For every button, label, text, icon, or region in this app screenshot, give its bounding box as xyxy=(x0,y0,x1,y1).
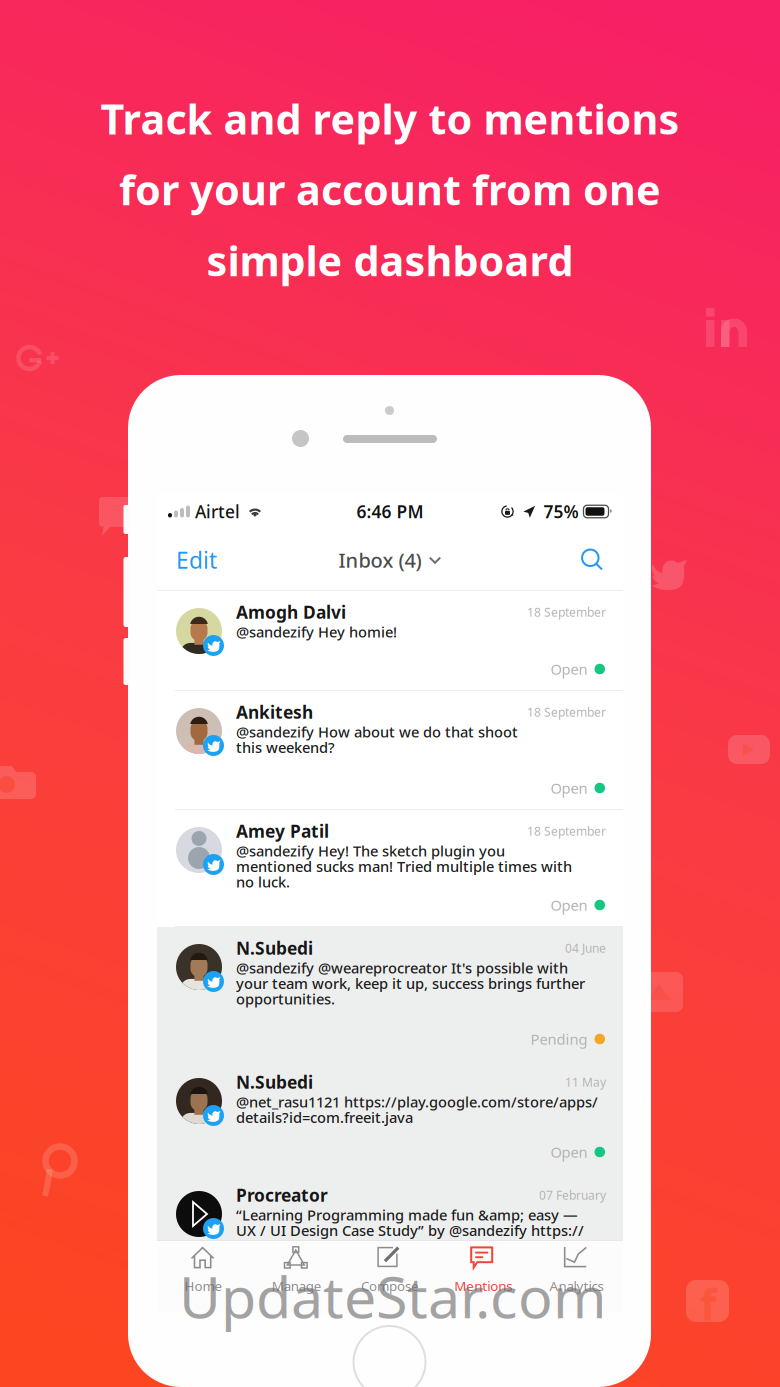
button[interactable]: Amey Patil xyxy=(157,810,623,926)
button[interactable]: Procreator xyxy=(157,1174,623,1245)
button[interactable]: Edit xyxy=(176,535,236,585)
staticText: no luck. xyxy=(236,872,290,891)
button[interactable]: Mentions xyxy=(437,1241,530,1313)
staticText: 07 February xyxy=(539,1187,606,1203)
staticText: details?id=com.freeit.java xyxy=(236,1107,413,1127)
staticText: UpdateStar.com xyxy=(179,1258,607,1334)
staticText: Inbox (4) xyxy=(338,547,421,573)
staticText: opportunities. xyxy=(236,989,335,1008)
staticText: Amey Patil xyxy=(236,819,329,842)
staticText: Home xyxy=(185,1277,223,1295)
staticText: 18 September xyxy=(527,704,606,720)
staticText: Pending xyxy=(530,1029,587,1049)
staticText: Track and reply to mentions xyxy=(100,91,679,146)
staticText: 04 June xyxy=(565,940,606,956)
staticText: @sandezify How about we do that shoot xyxy=(236,722,518,741)
button[interactable]: Home xyxy=(157,1241,250,1313)
button[interactable]: Manage xyxy=(250,1241,343,1313)
button[interactable]: Search xyxy=(544,535,604,585)
button[interactable]: Ankitesh xyxy=(157,691,623,809)
staticText: simple dashboard xyxy=(206,233,573,288)
staticText: 75% xyxy=(543,500,578,523)
button[interactable]: N.Subedi xyxy=(157,927,623,1060)
staticText: Ankitesh xyxy=(236,700,313,723)
staticText: Open xyxy=(550,895,587,915)
staticText: “Learning Programming made fun &amp; eas… xyxy=(236,1205,578,1224)
staticText: f xyxy=(700,1276,717,1332)
staticText: 6:46 PM xyxy=(356,500,423,523)
button[interactable]: Amogh Dalvi xyxy=(157,591,623,690)
staticText: 18 September xyxy=(527,823,606,839)
staticText: N.Subedi xyxy=(236,936,313,959)
staticText: @net_rasu1121 https://play.google.com/st… xyxy=(236,1092,598,1111)
staticText: 11 May xyxy=(565,1074,606,1090)
staticText: Airtel xyxy=(190,500,240,523)
button[interactable]: Analytics xyxy=(530,1241,623,1313)
staticText: Edit xyxy=(176,545,217,575)
button[interactable]: Compose xyxy=(343,1241,437,1313)
staticText: UX / UI Design Case Study” by @sandezify… xyxy=(236,1220,584,1240)
staticText: Procreator xyxy=(236,1183,328,1206)
staticText: 18 September xyxy=(527,604,606,620)
staticText: for your account from one xyxy=(119,162,661,217)
staticText: @sandezify Hey homie! xyxy=(236,622,397,641)
staticText: Analytics xyxy=(549,1277,603,1295)
staticText: Mentions xyxy=(454,1277,512,1295)
staticText: N.Subedi xyxy=(236,1070,313,1093)
staticText: Amogh Dalvi xyxy=(236,600,346,623)
staticText: Open xyxy=(550,778,587,798)
staticText: this weekend? xyxy=(236,737,335,757)
staticText: mentioned sucks man! Tried multiple time… xyxy=(236,856,572,876)
staticText: Compose xyxy=(361,1277,419,1295)
staticText: @sandezify @weareprocreator It's possibl… xyxy=(236,958,568,977)
staticText: your team work, keep it up, success brin… xyxy=(236,973,585,993)
button[interactable]: N.Subedi xyxy=(157,1061,623,1173)
staticText: Manage xyxy=(272,1277,322,1295)
staticText: Open xyxy=(550,1142,587,1162)
staticText: Open xyxy=(550,659,587,679)
staticText: @sandezify Hey! The sketch plugin you xyxy=(236,841,505,860)
button[interactable]: Inbox (4) xyxy=(338,535,441,585)
